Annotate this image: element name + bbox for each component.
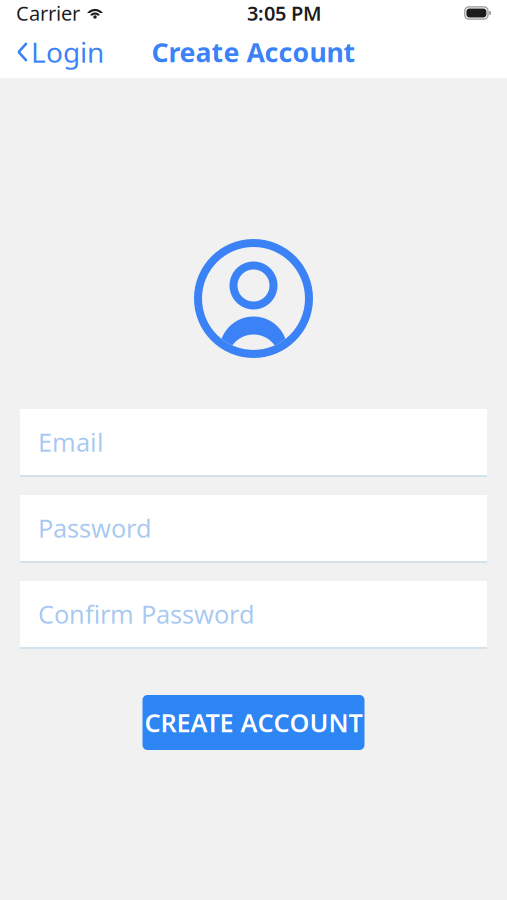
button[interactable]: CREATE ACCOUNT: [142, 695, 364, 750]
staticText: Confirm Password: [38, 597, 255, 631]
button[interactable]: Email: [20, 409, 487, 477]
button[interactable]: Confirm Password: [20, 581, 487, 649]
button[interactable]: Login: [12, 25, 108, 79]
staticText: 3:05 PM: [247, 0, 322, 26]
staticText: Create Account: [151, 34, 355, 70]
staticText: Login: [31, 33, 104, 71]
staticText: Carrier: [16, 0, 80, 26]
staticText: Password: [38, 511, 152, 545]
button[interactable]: Password: [20, 495, 487, 563]
staticText: CREATE ACCOUNT: [144, 706, 362, 739]
staticText: Email: [38, 425, 104, 459]
